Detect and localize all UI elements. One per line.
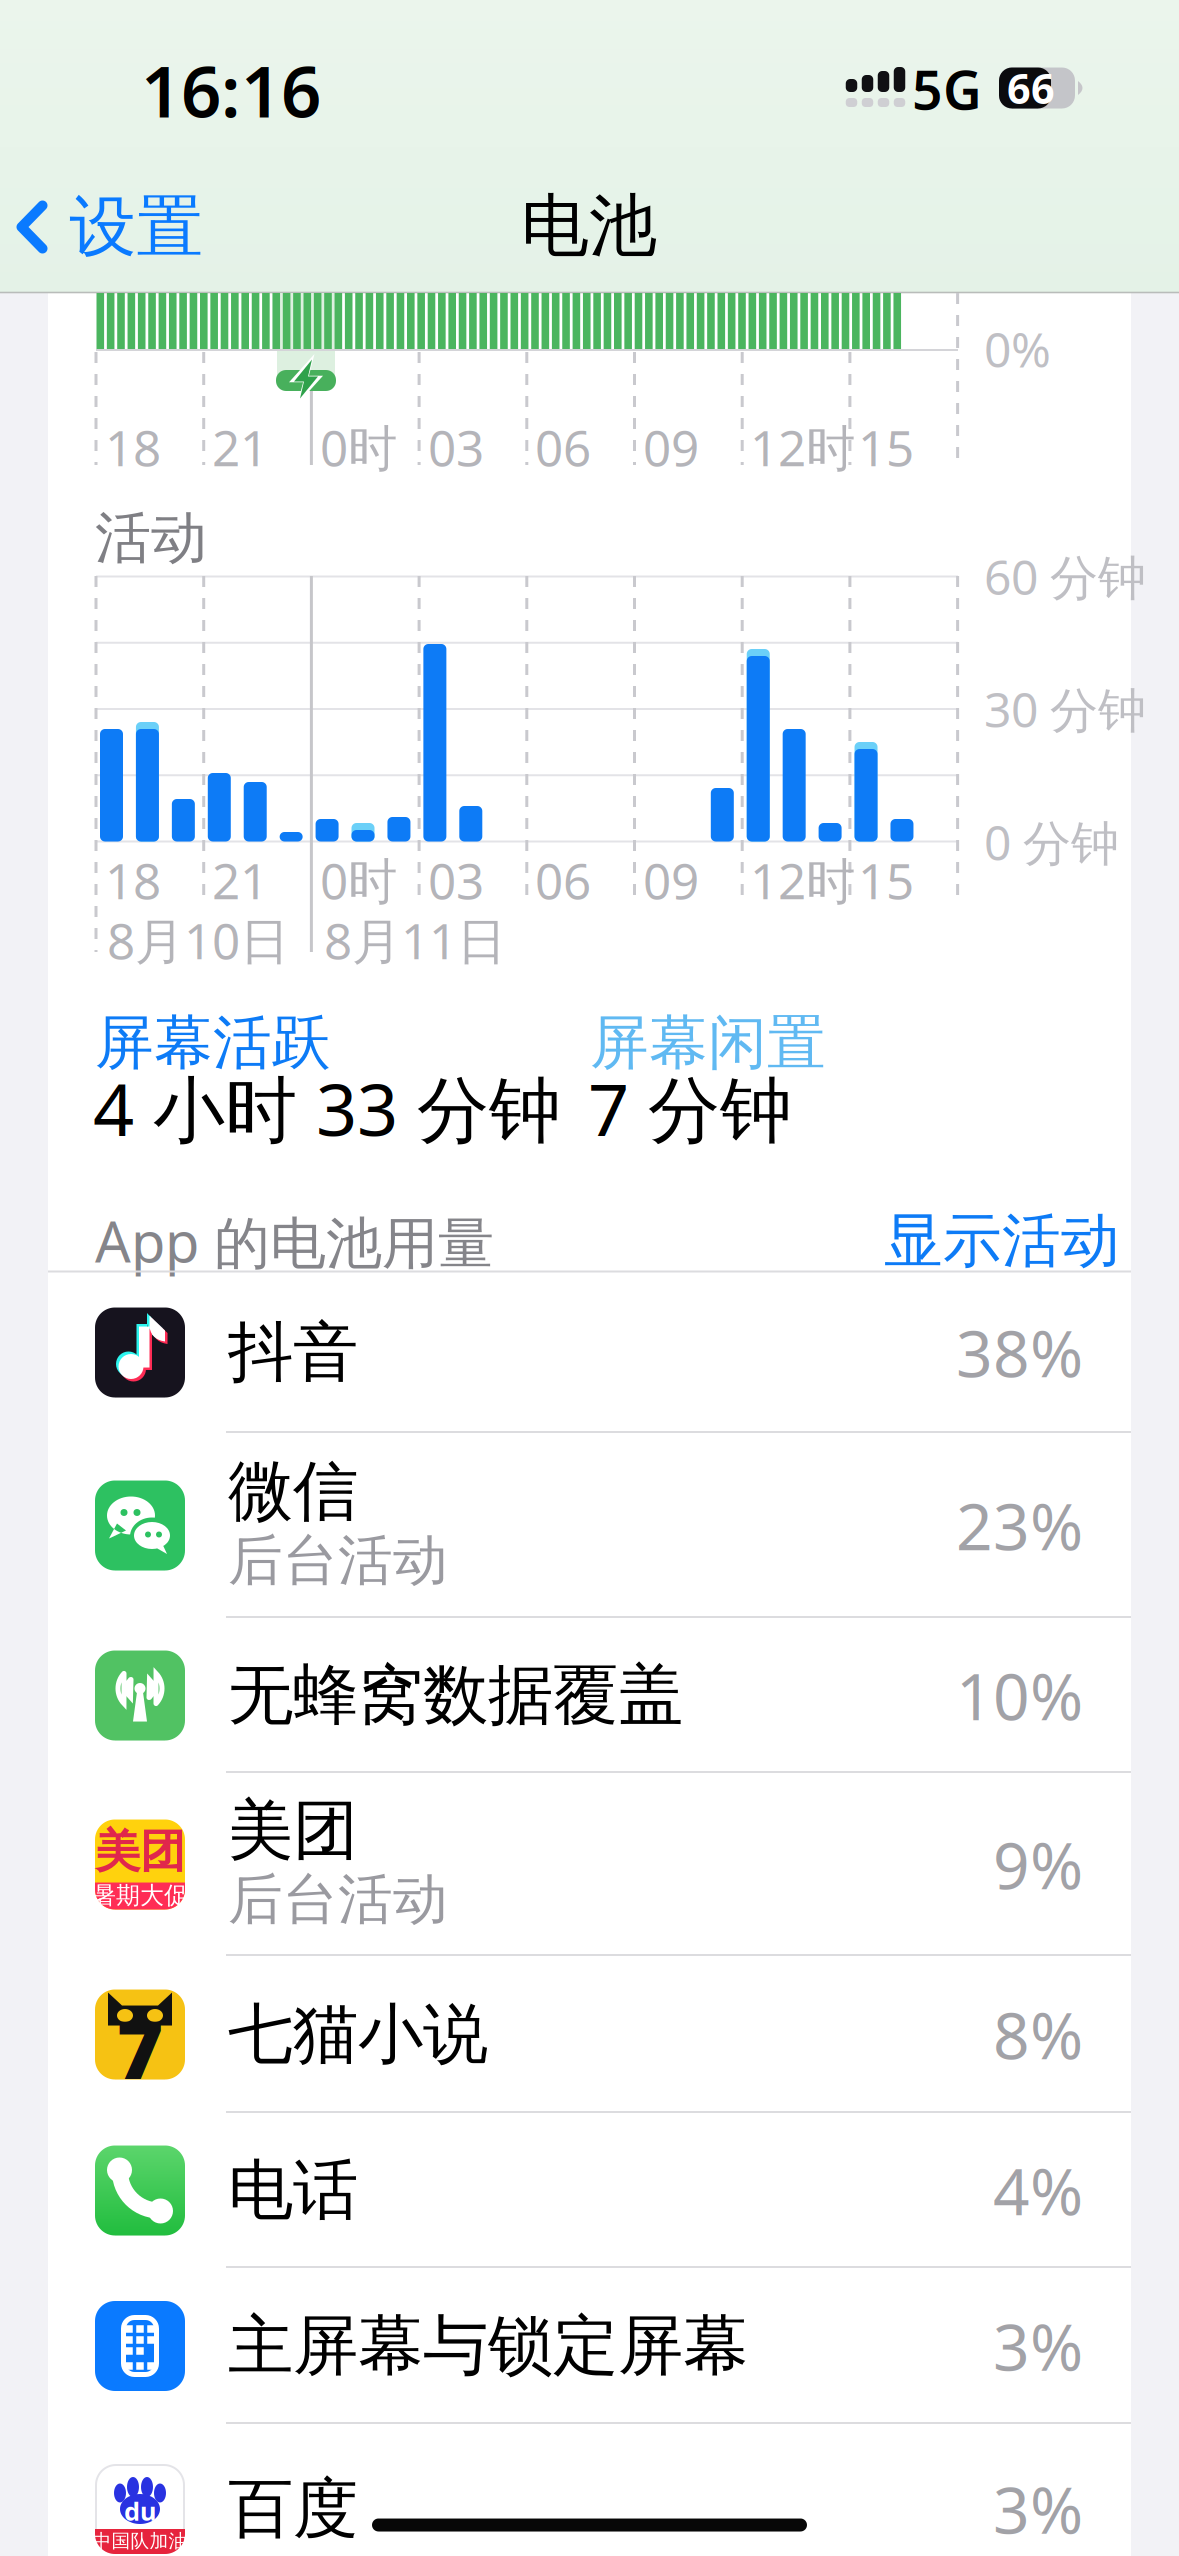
button[interactable]: 电话 bbox=[48, 2113, 1131, 2268]
button[interactable]: 返回设置 bbox=[16, 186, 203, 268]
staticText: 03 bbox=[428, 414, 484, 480]
staticText: 18 bbox=[105, 414, 161, 480]
staticText: 后台活动 bbox=[228, 1527, 448, 1594]
staticText: 06 bbox=[535, 414, 591, 480]
staticText: 12时 bbox=[750, 414, 855, 480]
staticText: 09 bbox=[643, 414, 699, 480]
staticText: 10% bbox=[956, 1653, 1083, 1738]
staticText: 0时 bbox=[320, 847, 397, 913]
staticText: 七猫小说 bbox=[228, 1994, 488, 2075]
staticText: 7 分钟 bbox=[588, 1060, 792, 1156]
button[interactable]: 7 bbox=[48, 1956, 1131, 2113]
staticText: 0 分钟 bbox=[984, 810, 1119, 874]
staticText: 8月11日 bbox=[324, 907, 506, 973]
staticText: App 的电池用量 bbox=[95, 1204, 494, 1278]
staticText: 9% bbox=[993, 1822, 1083, 1907]
staticText: 60 分钟 bbox=[984, 545, 1146, 608]
staticText: 0% bbox=[984, 317, 1051, 381]
staticText: 21 bbox=[212, 414, 268, 480]
staticText: 后台活动 bbox=[228, 1866, 448, 1933]
staticText: 百度 bbox=[228, 2469, 358, 2549]
staticText: 主屏幕与锁定屏幕 bbox=[228, 2306, 748, 2386]
button[interactable]: du bbox=[48, 2424, 1131, 2556]
staticText: du bbox=[124, 2494, 156, 2528]
staticText: 66 bbox=[1007, 61, 1055, 115]
staticText: 30 分钟 bbox=[984, 677, 1146, 741]
staticText: 06 bbox=[535, 847, 591, 913]
button[interactable]: 微信 bbox=[48, 1433, 1131, 1618]
staticText: 15 bbox=[858, 847, 914, 913]
button[interactable]: 美团 bbox=[48, 1773, 1131, 1956]
staticText: 电池 bbox=[521, 184, 657, 268]
staticText: 微信 bbox=[228, 1451, 358, 1532]
staticText: 美团 bbox=[228, 1790, 358, 1871]
staticText: 09 bbox=[643, 847, 699, 913]
button[interactable]: 无蜂窝数据覆盖 bbox=[48, 1618, 1131, 1773]
staticText: 屏幕活跃 bbox=[95, 1007, 331, 1079]
staticText: 0时 bbox=[320, 414, 397, 480]
staticText: 16:16 bbox=[141, 43, 321, 137]
staticText: 3% bbox=[993, 2466, 1083, 2551]
staticText: 12时 bbox=[750, 847, 855, 913]
staticText: 4% bbox=[993, 2148, 1083, 2233]
staticText: 暑期大促 bbox=[92, 1881, 188, 1910]
staticText: 设置 bbox=[69, 186, 203, 268]
staticText: 3% bbox=[993, 2303, 1083, 2388]
staticText: 显示活动 bbox=[884, 1205, 1120, 1277]
button[interactable]: 显示活动 bbox=[884, 1205, 1120, 1277]
staticText: 无蜂窝数据覆盖 bbox=[228, 1655, 683, 1736]
staticText: 03 bbox=[428, 847, 484, 913]
staticText: 5G bbox=[912, 54, 982, 124]
staticText: 屏幕闲置 bbox=[590, 1007, 826, 1079]
button[interactable]: 主屏幕与锁定屏幕 bbox=[48, 2268, 1131, 2424]
staticText: 中国队加油 bbox=[92, 2529, 187, 2552]
staticText: 抖音 bbox=[228, 1312, 358, 1393]
staticText: 电话 bbox=[228, 2150, 358, 2231]
staticText: 15 bbox=[858, 414, 914, 480]
staticText: 活动 bbox=[95, 504, 207, 572]
staticText: 38% bbox=[956, 1310, 1083, 1395]
staticText: 21 bbox=[212, 847, 268, 913]
staticText: 18 bbox=[105, 847, 161, 913]
staticText: 23% bbox=[956, 1483, 1083, 1568]
staticText: 美团 bbox=[95, 1824, 185, 1879]
staticText: 7 bbox=[116, 1994, 163, 2101]
button[interactable]: 抖音 bbox=[48, 1272, 1131, 1433]
staticText: 8月10日 bbox=[107, 907, 289, 973]
staticText: 4 小时 33 分钟 bbox=[93, 1060, 561, 1156]
staticText: 8% bbox=[993, 1992, 1083, 2077]
